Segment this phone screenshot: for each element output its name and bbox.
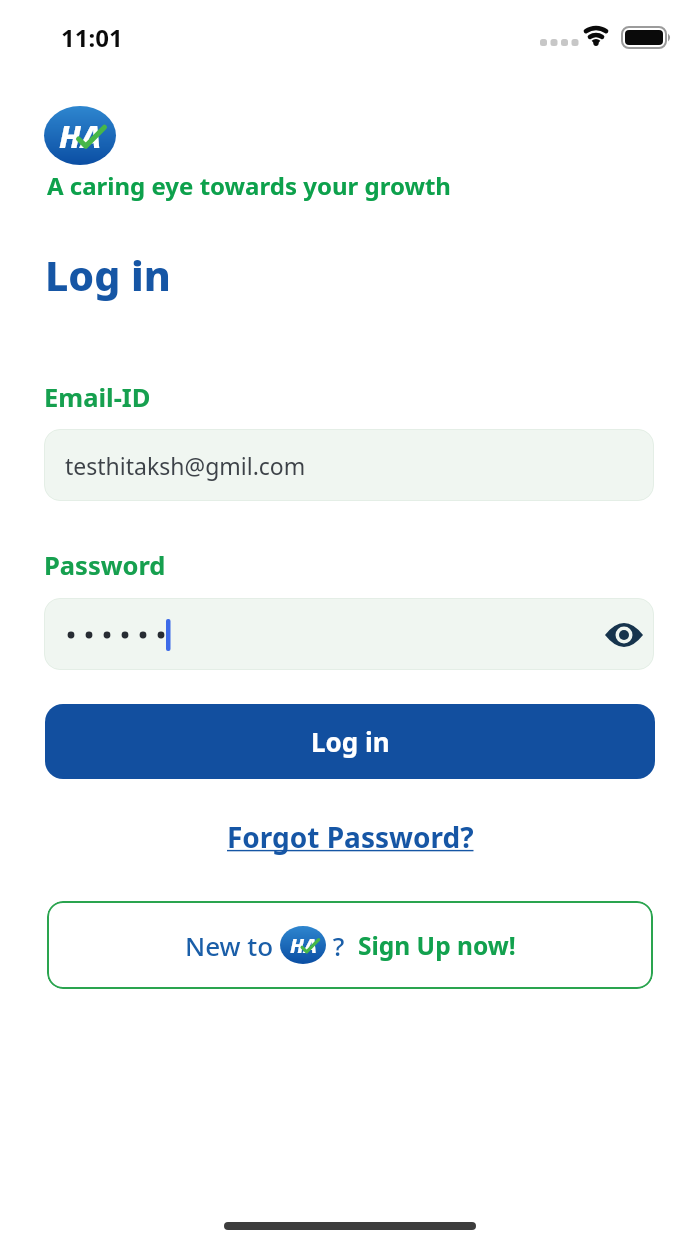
staticText: testhitaksh@gmil.com: [65, 450, 306, 481]
staticText: 11:01: [61, 21, 123, 54]
button[interactable]: New to: [47, 901, 653, 989]
staticText: Email-ID: [44, 380, 151, 415]
staticText: New to: [185, 928, 280, 963]
staticText: Password: [44, 548, 166, 583]
staticText: A caring eye towards your growth: [47, 169, 451, 202]
button[interactable]: [44, 598, 654, 670]
button[interactable]: testhitaksh@gmil.com: [44, 429, 654, 501]
staticText: HA: [59, 115, 102, 157]
staticText: Log in: [45, 247, 171, 303]
staticText: ?: [326, 928, 352, 963]
staticText: Sign Up now!: [358, 929, 516, 962]
button[interactable]: Forgot Password?: [227, 818, 474, 856]
staticText: HA: [290, 932, 317, 959]
staticText: Log in: [311, 724, 390, 759]
button[interactable]: Log in: [45, 704, 655, 779]
